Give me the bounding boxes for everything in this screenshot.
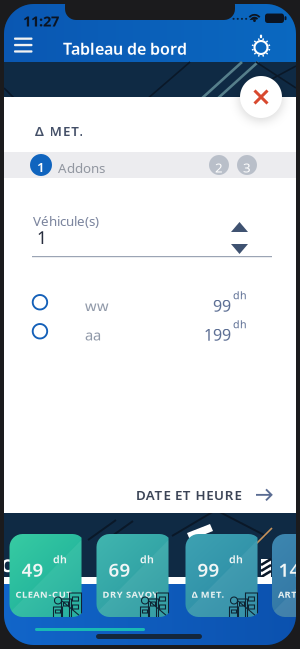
staticText: 99	[197, 557, 219, 582]
button[interactable]: 69	[96, 534, 172, 617]
staticText: dh	[140, 552, 154, 566]
staticText: C	[1, 554, 12, 577]
button[interactable]: Menu	[8, 31, 38, 59]
button[interactable]: 99	[185, 534, 261, 617]
staticText: dh	[229, 552, 243, 566]
staticText: 149	[278, 557, 300, 582]
staticText: ART	[278, 588, 296, 600]
staticText: aa	[85, 325, 101, 344]
staticText: 199	[204, 324, 231, 345]
staticText: ww	[85, 296, 109, 315]
staticText: 69	[108, 557, 130, 582]
staticText: dh	[233, 288, 247, 302]
button[interactable]: aa	[4, 317, 296, 346]
staticText: CLEAN-CUT	[15, 588, 71, 600]
staticText: Δ MET.	[191, 588, 224, 600]
staticText: Tableau de bord	[63, 38, 187, 59]
staticText: 11:27	[23, 11, 59, 30]
button[interactable]: Augmenter	[231, 222, 248, 232]
staticText: Véhicule(s)	[33, 212, 99, 230]
button[interactable]: Étape 2	[209, 155, 229, 175]
button[interactable]: 149	[272, 534, 300, 617]
staticText: DRY SAVOY	[102, 588, 158, 600]
staticText: dh	[233, 317, 247, 331]
staticText: dh	[53, 552, 67, 566]
button[interactable]: Étape 3	[237, 155, 257, 175]
button[interactable]: DATE ET HEURE	[128, 478, 280, 512]
button[interactable]: 49	[9, 534, 85, 617]
button[interactable]: Fermer	[240, 76, 282, 118]
button[interactable]: ww	[4, 288, 296, 317]
staticText: 1	[37, 226, 47, 249]
staticText: 1	[37, 158, 45, 176]
staticText: Addons	[58, 159, 105, 177]
staticText: 49	[21, 557, 43, 582]
staticText: 3	[243, 158, 251, 176]
button[interactable]: Diminuer	[231, 244, 248, 254]
staticText: Δ MET.	[35, 122, 83, 140]
button[interactable]: Profil	[250, 34, 272, 58]
staticText: 99	[213, 295, 231, 316]
staticText: 2	[215, 158, 223, 176]
staticText: DATE ET HEURE	[136, 486, 242, 504]
